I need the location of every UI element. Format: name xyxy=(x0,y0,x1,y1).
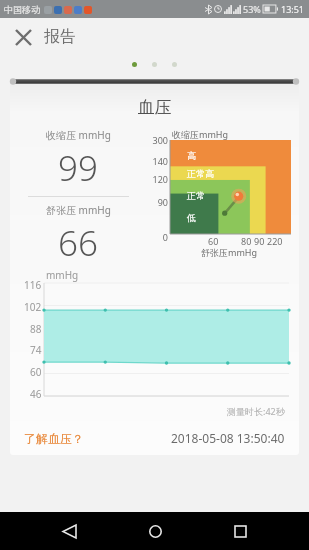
staticText: 13:51 xyxy=(281,3,305,15)
staticText: 0 xyxy=(146,231,168,243)
staticText: 90 xyxy=(254,235,265,247)
staticText: 2018-05-08 13:50:40 xyxy=(171,430,285,446)
staticText: 120 xyxy=(146,173,168,185)
staticText: 60 xyxy=(30,365,42,379)
staticText: 血压 xyxy=(10,97,299,118)
staticText: 80 xyxy=(241,235,252,247)
staticText: 220 xyxy=(267,235,283,247)
staticText: 74 xyxy=(30,343,42,357)
staticText: 了解血压？ xyxy=(24,431,84,446)
staticText: 舒张压 mmHg xyxy=(46,203,111,217)
staticText: 300 xyxy=(146,134,168,146)
staticText: 报告 xyxy=(44,27,76,47)
staticText: 60 xyxy=(208,235,219,247)
staticText: 收缩压 mmHg xyxy=(46,128,111,142)
staticText: 88 xyxy=(30,322,42,336)
staticText: 高 xyxy=(187,150,196,161)
staticText: 66 xyxy=(58,219,98,258)
button[interactable]: Close xyxy=(8,22,38,52)
staticText: 中国移动 xyxy=(4,4,40,15)
staticText: 测量时长:42秒 xyxy=(227,405,285,417)
button[interactable]: Back xyxy=(52,514,86,548)
staticText: 低 xyxy=(187,212,196,223)
button[interactable]: Home xyxy=(138,514,172,548)
staticText: 116 xyxy=(24,278,42,292)
staticText: 90 xyxy=(146,196,168,208)
staticText: 53% xyxy=(243,3,261,15)
staticText: 收缩压mmHg xyxy=(172,128,229,140)
staticText: mmHg xyxy=(46,268,79,282)
staticText: 正常 xyxy=(187,190,205,201)
button[interactable]: 了解血压？ xyxy=(24,431,84,446)
staticText: 舒张压mmHg xyxy=(201,246,258,258)
staticText: 99 xyxy=(58,144,98,192)
staticText: 正常高 xyxy=(187,168,214,179)
staticText: 102 xyxy=(24,300,42,314)
button[interactable]: Recents xyxy=(223,514,257,548)
staticText: 140 xyxy=(146,155,168,167)
staticText: 46 xyxy=(30,387,42,401)
